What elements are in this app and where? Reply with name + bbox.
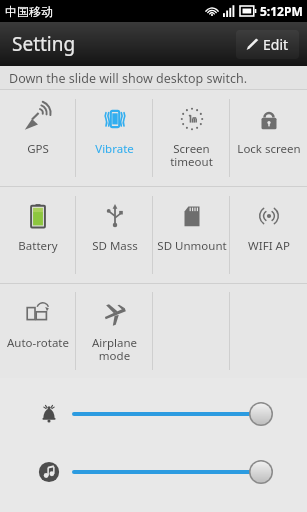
staticText: SD Unmount [157,238,227,254]
staticText: Lock screen [237,141,301,157]
button[interactable]: Battery [0,187,76,283]
staticText: Auto-rotate [7,335,69,351]
staticText: Setting [12,31,76,57]
staticText: 5:12PM [260,3,303,19]
staticText: Airplane mode [76,335,153,364]
staticText: Down the slide will show desktop switch. [9,70,248,87]
button[interactable]: Screen timeout [153,90,230,186]
button[interactable]: WIFI AP [230,187,307,283]
button[interactable]: Airplane mode [76,284,153,378]
staticText: Screen timeout [170,141,213,170]
button[interactable]: Edit [236,30,299,59]
staticText: Battery [18,238,58,254]
button[interactable]: Media volume [0,454,307,490]
staticText: Edit [263,35,289,54]
staticText: WIFI AP [248,238,290,254]
button[interactable]: SD Mass [76,187,153,283]
button[interactable]: GPS [0,90,76,186]
staticText: 中国移动 [5,4,53,19]
staticText: Vibrate [95,141,134,157]
staticText: GPS [27,141,49,157]
button[interactable]: SD Unmount [153,187,230,283]
staticText: SD Mass [92,238,138,254]
button[interactable]: Ringer volume [0,396,307,432]
button[interactable]: Lock screen [230,90,307,186]
button[interactable]: Auto-rotate [0,284,76,378]
button[interactable]: Vibrate [76,90,153,186]
